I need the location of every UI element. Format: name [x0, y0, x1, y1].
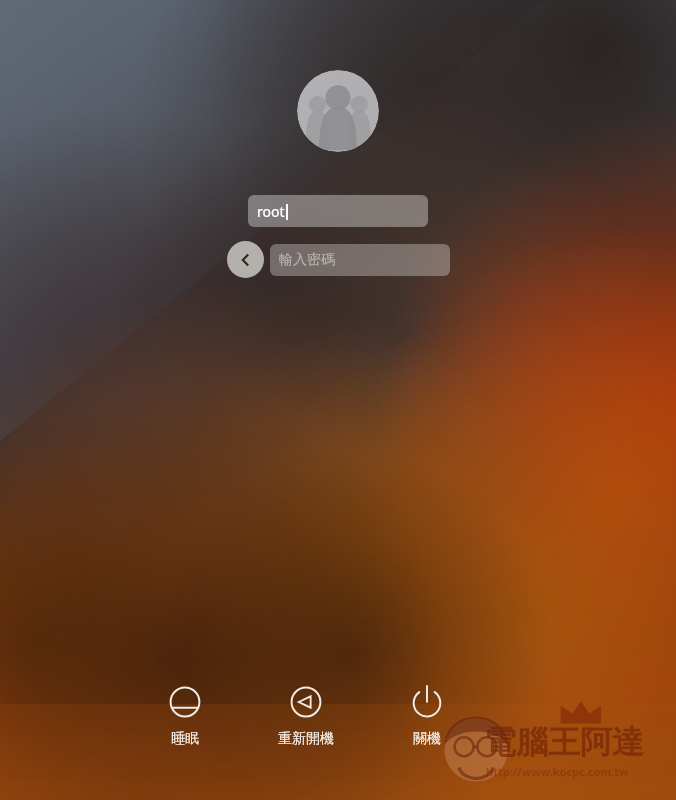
- staticText: 關機: [413, 730, 441, 748]
- staticText: 電腦王阿達: [484, 722, 644, 762]
- staticText: http://www.kocpc.com.tw: [486, 764, 629, 779]
- button[interactable]: Back: [227, 241, 264, 278]
- staticText: 輸入密碼: [279, 251, 335, 269]
- staticText: 睡眠: [171, 730, 199, 748]
- button[interactable]: Shut down: [387, 684, 467, 748]
- button[interactable]: Restart: [266, 684, 346, 748]
- staticText: root: [257, 202, 285, 221]
- button[interactable]: Sleep: [145, 684, 225, 748]
- button[interactable]: User avatar: [297, 70, 379, 152]
- button[interactable]: root: [248, 195, 428, 227]
- staticText: 重新開機: [278, 730, 334, 748]
- button[interactable]: 輸入密碼: [270, 244, 450, 276]
